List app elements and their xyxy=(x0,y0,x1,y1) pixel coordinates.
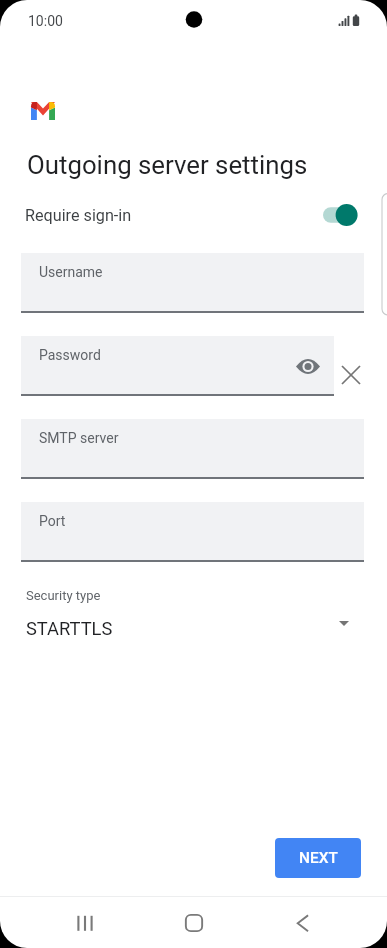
staticText: Outgoing server settings xyxy=(27,150,308,180)
button[interactable]: NEXT xyxy=(275,838,361,878)
staticText: Security type xyxy=(26,588,101,603)
staticText: Require sign-in xyxy=(25,206,132,225)
button[interactable]: SMTP server xyxy=(21,419,364,479)
staticText: STARTTLS xyxy=(26,618,113,639)
button[interactable]: Username xyxy=(21,253,364,313)
staticText: SMTP server xyxy=(39,430,119,446)
button[interactable]: Password xyxy=(21,336,334,396)
button[interactable] xyxy=(323,200,363,230)
button[interactable]: Back xyxy=(278,898,326,948)
button[interactable]: Show password xyxy=(291,354,325,378)
staticText: NEXT xyxy=(299,849,338,867)
button[interactable]: Require sign-in xyxy=(0,197,387,233)
button[interactable]: STARTTLS xyxy=(0,612,387,644)
staticText: Password xyxy=(39,347,101,363)
staticText: 10:00 xyxy=(28,13,63,29)
staticText: Port xyxy=(39,513,66,529)
button[interactable]: Open dropdown xyxy=(331,610,357,636)
button[interactable]: Recent apps xyxy=(61,898,109,948)
staticText: Username xyxy=(39,264,103,280)
button[interactable]: Home xyxy=(170,898,218,948)
button[interactable]: Clear xyxy=(332,356,369,393)
button[interactable]: Port xyxy=(21,502,364,562)
